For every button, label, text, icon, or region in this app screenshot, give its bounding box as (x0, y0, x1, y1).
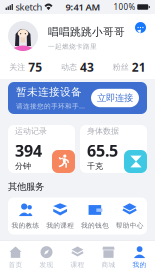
button[interactable]: 唱唱跳跳小哥哥 (8, 21, 125, 51)
staticText: 请连接您的手环和手环同步数据 (16, 102, 87, 110)
button[interactable]: 帮助中心 (112, 202, 147, 230)
button[interactable]: 粉丝 (103, 59, 155, 75)
staticText: 身体数据 (87, 126, 119, 136)
button[interactable]: 立即连接 (91, 89, 139, 107)
button[interactable]: 发现 (31, 246, 62, 269)
button[interactable]: 我的 (124, 246, 155, 269)
staticText: 我的教练 (11, 221, 39, 230)
button[interactable]: 运动记录 (8, 125, 75, 173)
staticText: 暂未连接设备 (16, 85, 82, 99)
staticText: 发现 (39, 261, 53, 269)
button[interactable]: 商城 (93, 246, 124, 269)
staticText: 我的课程 (46, 221, 74, 230)
button[interactable]: 我的课程 (43, 202, 78, 230)
staticText: 运动记录 (15, 126, 47, 136)
staticText: 课程 (70, 261, 84, 269)
staticText: 首页 (8, 261, 22, 269)
staticText: 立即连接 (97, 92, 133, 104)
staticText: 商城 (101, 261, 115, 269)
staticText: 其他服务 (8, 181, 44, 192)
button[interactable]: 首页 (0, 246, 31, 269)
staticText: 我的 (132, 261, 146, 269)
staticText: 一起燃烧卡路里 (48, 42, 97, 51)
staticText: 唱唱跳跳小哥哥 (48, 25, 125, 38)
staticText: 千克 (87, 161, 103, 171)
button[interactable]: 我的教练 (8, 202, 43, 230)
staticText: 9:41 AM (65, 1, 100, 13)
button[interactable]: 我的钱包 (77, 202, 112, 230)
button[interactable]: 身体数据 (80, 125, 147, 173)
staticText: 21 (132, 59, 146, 75)
button[interactable]: 关注 (0, 59, 52, 75)
staticText: 帮助中心 (116, 221, 144, 230)
staticText: 动态 (61, 62, 77, 72)
button[interactable]: 消息 (135, 21, 147, 34)
staticText: 43 (80, 59, 94, 75)
staticText: sketch (15, 1, 42, 13)
staticText: 我的钱包 (81, 221, 109, 230)
button[interactable]: 课程 (62, 246, 93, 269)
staticText: 分钟 (15, 161, 31, 171)
staticText: 粉丝 (113, 62, 129, 72)
staticText: 75 (28, 59, 42, 75)
staticText: 65.5 (87, 140, 118, 161)
staticText: 394 (15, 140, 42, 161)
button[interactable]: 动态 (52, 59, 103, 75)
staticText: 关注 (9, 62, 25, 72)
staticText: 100% (113, 2, 135, 12)
